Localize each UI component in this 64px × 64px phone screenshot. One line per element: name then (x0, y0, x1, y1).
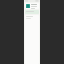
button[interactable]: Open item (25, 3, 39, 9)
button[interactable] (25, 10, 39, 14)
button[interactable] (25, 15, 39, 64)
button[interactable]: Open item (26, 4, 30, 8)
